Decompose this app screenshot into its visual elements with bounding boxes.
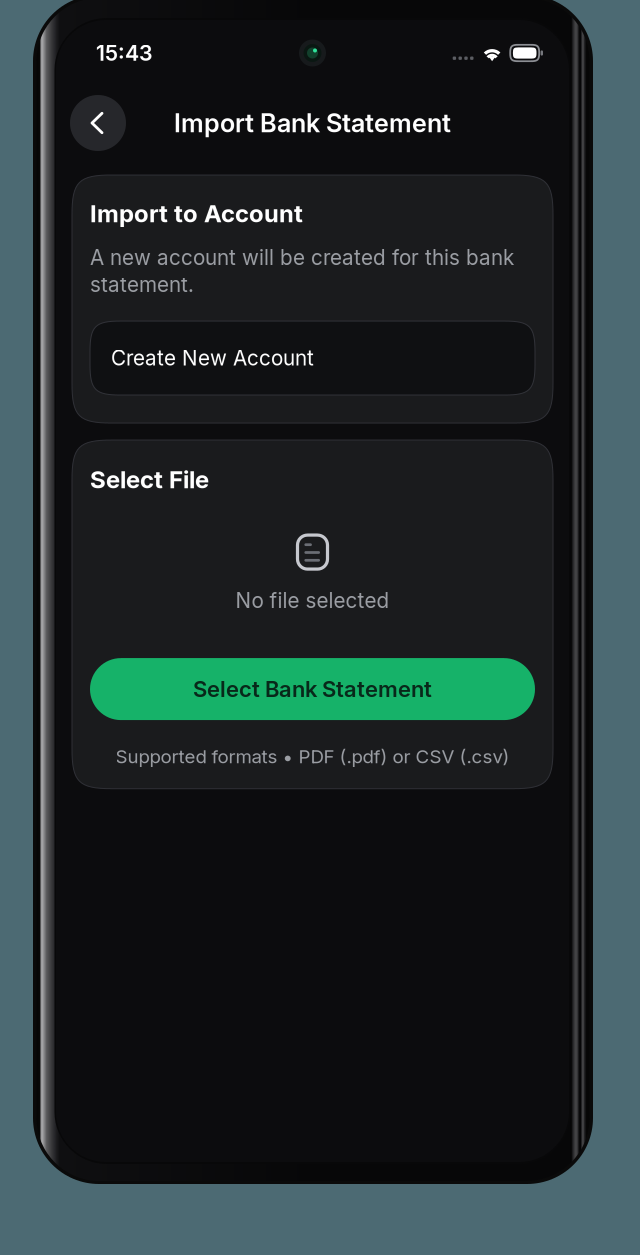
staticText: No file selected (235, 588, 389, 613)
staticText: Supported formats • PDF (.pdf) or CSV (.… (115, 745, 509, 768)
staticText: 15:43 (96, 40, 153, 66)
button[interactable]: Back (70, 95, 126, 151)
staticText: Import to Account (90, 199, 303, 228)
staticText: Create New Account (111, 345, 314, 370)
staticText: Select File (90, 465, 209, 494)
button[interactable]: Create New Account (90, 321, 535, 395)
staticText: Import Bank Statement (174, 108, 451, 138)
staticText: A new account will be created for this b… (90, 245, 514, 297)
staticText: Select Bank Statement (193, 676, 432, 702)
button[interactable]: Select Bank Statement (90, 658, 535, 720)
